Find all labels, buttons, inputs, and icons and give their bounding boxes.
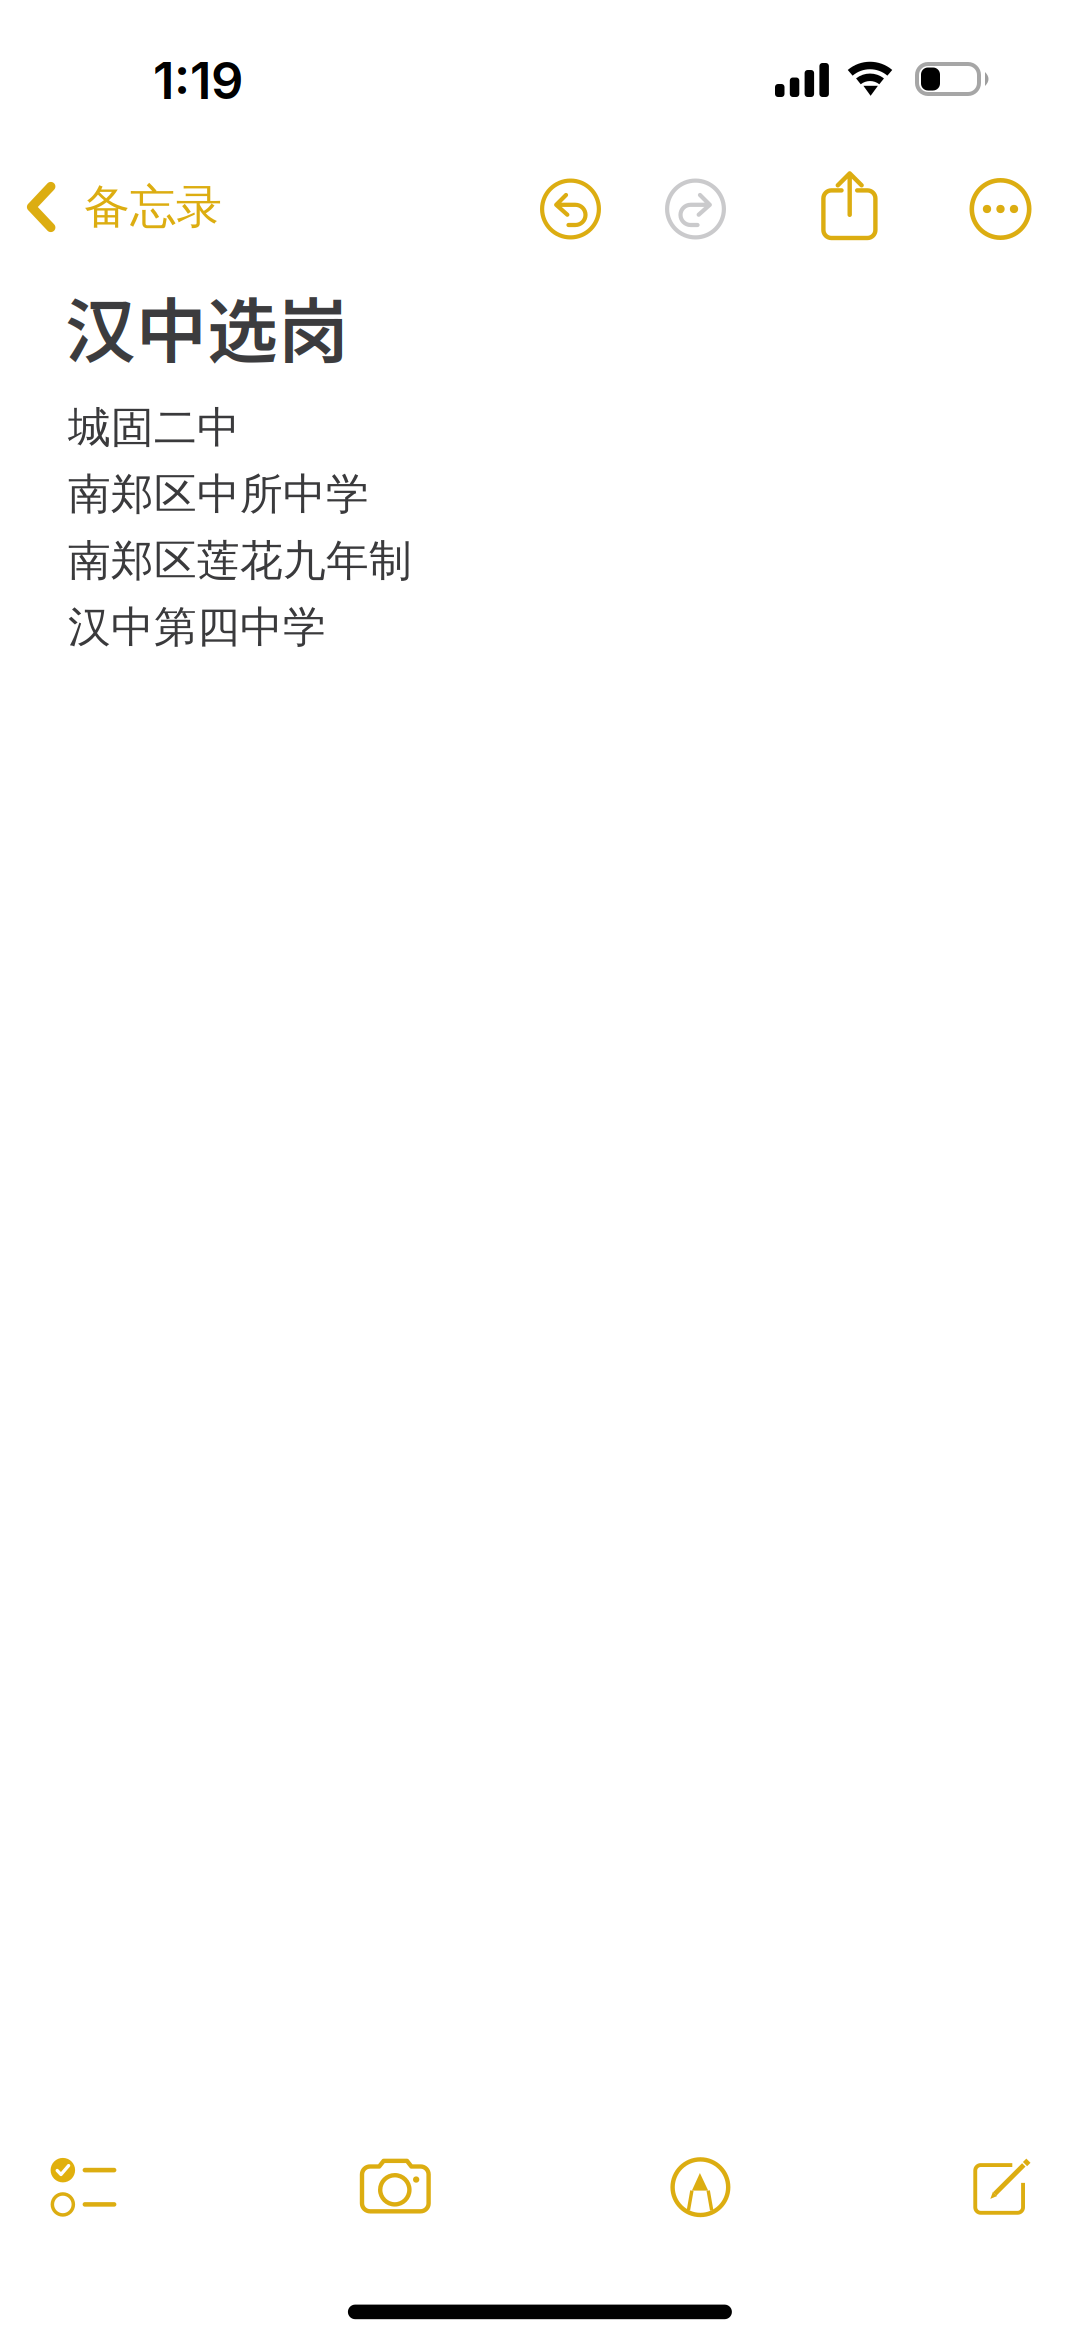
staticText: 城固二中 <box>68 401 240 455</box>
staticText: 1:19 <box>153 50 243 111</box>
button[interactable]: Checklist <box>23 2126 145 2248</box>
button[interactable]: New Note <box>942 2125 1064 2247</box>
staticText: 汉中选岗 <box>65 275 349 377</box>
button[interactable]: Redo <box>634 148 756 270</box>
button[interactable]: Share <box>789 146 911 268</box>
staticText: 汉中第四中学 <box>68 600 326 654</box>
staticText: 南郑区中所中学 <box>68 467 369 521</box>
staticText: 南郑区莲花九年制 <box>68 534 412 588</box>
staticText: 备忘录 <box>84 178 222 236</box>
button[interactable]: Undo <box>509 148 631 270</box>
button[interactable]: 备忘录 <box>0 159 260 255</box>
button[interactable]: More <box>939 148 1061 270</box>
button[interactable]: Markup <box>639 2126 761 2248</box>
button[interactable]: Camera <box>335 2125 457 2247</box>
